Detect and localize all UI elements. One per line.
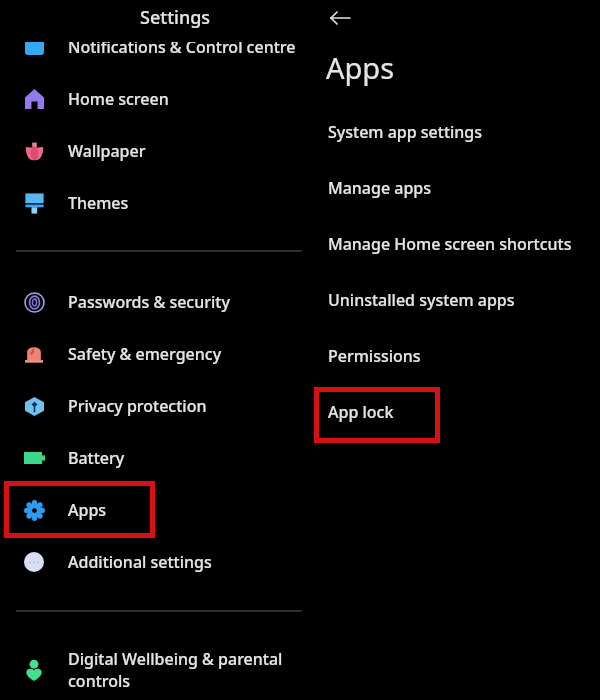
button[interactable]: Safety & emergency — [0, 328, 305, 380]
button[interactable]: Uninstalled system apps — [305, 272, 600, 328]
staticText: Battery — [68, 447, 125, 469]
staticText: Notifications & Control centre — [68, 42, 296, 58]
button[interactable]: Home screen — [0, 73, 305, 125]
staticText: Home screen — [68, 88, 169, 110]
staticText: App lock — [328, 401, 394, 423]
button[interactable]: Additional settings — [0, 536, 305, 588]
button[interactable]: Digital Wellbeing & parental controls — [0, 640, 305, 700]
staticText: Apps — [68, 499, 107, 521]
staticText: Themes — [68, 192, 129, 214]
button[interactable]: Passwords & security — [0, 276, 305, 328]
staticText: Manage apps — [328, 177, 432, 199]
button[interactable]: Apps — [0, 484, 305, 536]
staticText: Privacy protection — [68, 395, 207, 417]
staticText: Additional settings — [68, 551, 212, 573]
button[interactable]: Permissions — [305, 328, 600, 384]
staticText: System app settings — [328, 121, 483, 143]
staticText: Permissions — [328, 345, 421, 367]
button[interactable]: Battery — [0, 432, 305, 484]
staticText: Digital Wellbeing & parental controls — [68, 648, 283, 692]
button[interactable]: Manage apps — [305, 160, 600, 216]
staticText: Manage Home screen shortcuts — [328, 233, 572, 255]
button[interactable]: Manage Home screen shortcuts — [305, 216, 600, 272]
button[interactable]: Notifications & Control centre — [0, 42, 305, 73]
staticText: Wallpaper — [68, 140, 146, 162]
button[interactable]: System app settings — [305, 104, 600, 160]
staticText: Uninstalled system apps — [328, 289, 515, 311]
staticText: Passwords & security — [68, 291, 230, 313]
staticText: Safety & emergency — [68, 343, 222, 365]
staticText: Apps — [326, 48, 395, 87]
button[interactable]: App lock — [305, 384, 600, 440]
button[interactable]: Themes — [0, 177, 305, 229]
button[interactable]: Privacy protection — [0, 380, 305, 432]
button[interactable]: Wallpaper — [0, 125, 305, 177]
staticText: Settings — [140, 5, 211, 30]
button[interactable]: Back — [322, 0, 358, 36]
